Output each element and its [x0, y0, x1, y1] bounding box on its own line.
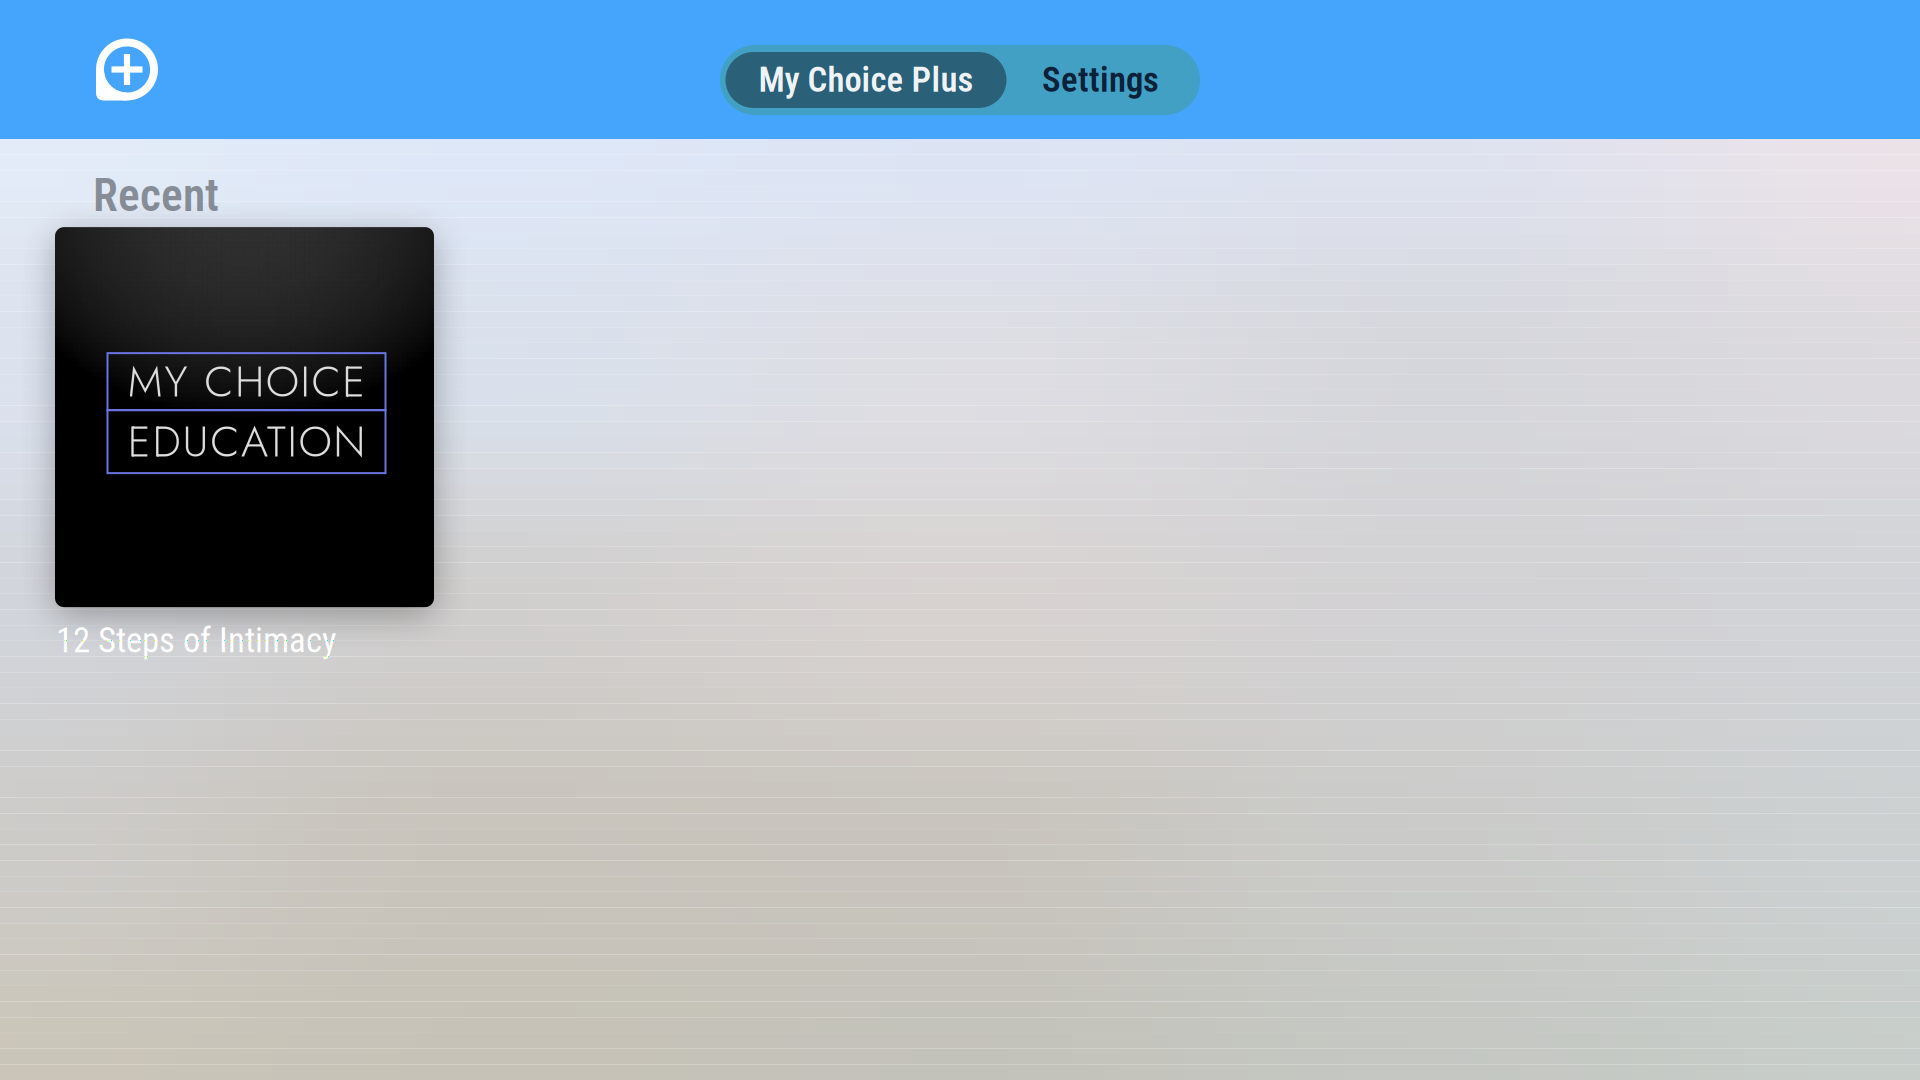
staticText: EDUCATION	[128, 411, 365, 472]
button[interactable]: Add	[0, 0, 178, 139]
button[interactable]: My Choice Plus	[725, 52, 1006, 108]
staticText: MY CHOICE	[128, 351, 365, 412]
staticText: Recent	[93, 169, 219, 222]
button[interactable]: Settings	[1006, 52, 1194, 108]
staticText: 12 Steps of Intimacy	[56, 620, 336, 661]
staticText: Settings	[1042, 60, 1159, 100]
button[interactable]: MY CHOICE	[0, 222, 434, 661]
staticText: My Choice Plus	[758, 60, 973, 100]
